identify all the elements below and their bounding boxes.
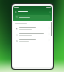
button[interactable]: Open: [13, 31, 52, 37]
button[interactable]: Open: [13, 25, 52, 31]
button[interactable]: [15, 15, 50, 19]
button[interactable]: Open: [13, 37, 52, 43]
button[interactable]: Back: [14, 10, 17, 13]
button[interactable]: More options: [48, 10, 51, 13]
